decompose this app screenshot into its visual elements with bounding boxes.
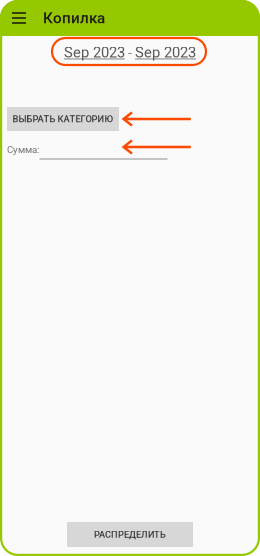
staticText: Копилка: [43, 9, 105, 27]
staticText: Sep 2023: [135, 44, 196, 61]
button[interactable]: ВЫБРАТЬ КАТЕГОРИЮ: [7, 107, 119, 131]
button[interactable]: Sep 2023: [53, 39, 207, 66]
staticText: Сумма:: [7, 144, 39, 155]
staticText: РАСПРЕДЕЛИТЬ: [94, 529, 166, 540]
button[interactable]: [40, 144, 167, 160]
staticText: ВЫБРАТЬ КАТЕГОРИЮ: [12, 113, 113, 124]
staticText: Sep 2023: [64, 44, 125, 61]
button[interactable]: РАСПРЕДЕЛИТЬ: [67, 522, 193, 547]
staticText: -: [128, 44, 132, 61]
button[interactable]: Menu: [0, 0, 38, 36]
